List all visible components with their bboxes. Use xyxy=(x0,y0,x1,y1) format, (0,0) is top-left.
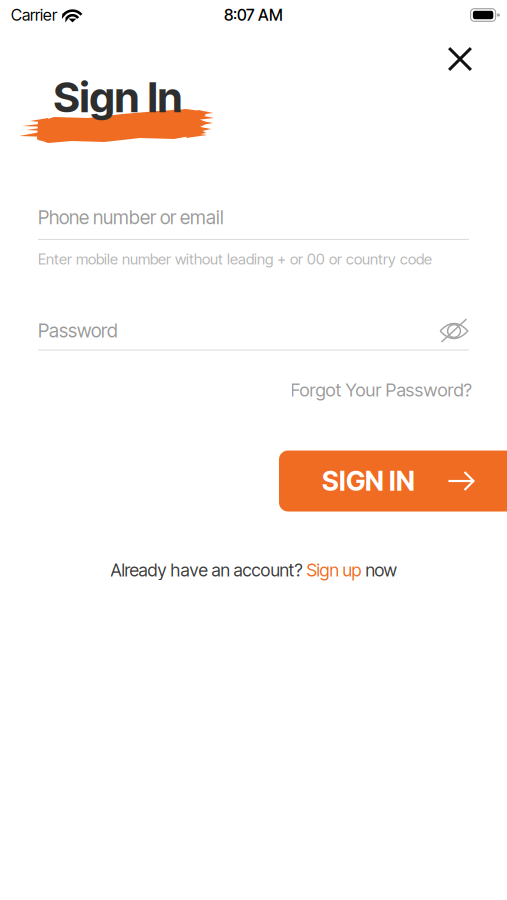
staticText: Sign In xyxy=(53,72,182,122)
staticText: 8:07 AM xyxy=(224,5,283,25)
staticText: Phone number or email xyxy=(38,206,224,229)
button[interactable]: SIGN IN xyxy=(279,450,507,511)
button[interactable]: Sign up xyxy=(306,559,361,581)
button[interactable]: Close xyxy=(437,36,482,81)
staticText: now xyxy=(361,559,396,581)
button[interactable]: Show password xyxy=(439,317,469,343)
staticText: Sign up xyxy=(306,559,361,581)
staticText: Enter mobile number without leading + or… xyxy=(38,250,432,268)
staticText: Carrier xyxy=(11,5,57,25)
staticText: SIGN IN xyxy=(322,465,415,497)
staticText: Already have an account? xyxy=(110,559,306,581)
staticText: Password xyxy=(38,319,118,342)
staticText: Forgot Your Password? xyxy=(290,379,471,401)
button[interactable]: Forgot Your Password? xyxy=(290,379,471,401)
